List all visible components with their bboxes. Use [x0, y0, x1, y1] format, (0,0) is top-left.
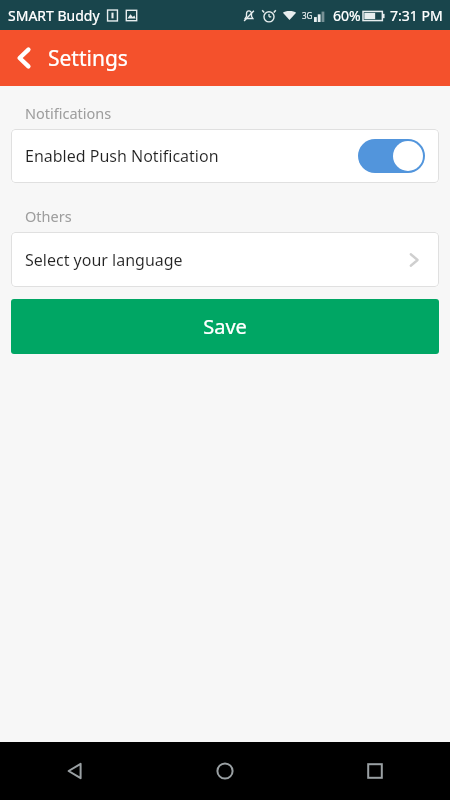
staticText: Settings: [48, 44, 128, 73]
staticText: 60%: [333, 6, 361, 25]
staticText: 7:31 PM: [390, 6, 443, 25]
staticText: Enabled Push Notification: [25, 145, 358, 167]
button[interactable]: Save: [11, 299, 439, 354]
staticText: Select your language: [25, 249, 405, 271]
button[interactable]: Enabled Push Notification: [11, 129, 439, 183]
staticText: Notifications: [25, 103, 112, 123]
button[interactable]: Back: [0, 742, 150, 800]
other: Push notification toggle: [358, 139, 425, 173]
staticText: Others: [25, 206, 72, 226]
staticText: Save: [203, 313, 247, 340]
button[interactable]: Recents: [300, 742, 450, 800]
staticText: SMART Buddy: [8, 6, 100, 25]
button[interactable]: Home: [150, 742, 300, 800]
button[interactable]: Back: [0, 34, 48, 82]
button[interactable]: Select your language: [11, 232, 439, 287]
staticText: 3G: [302, 10, 313, 21]
